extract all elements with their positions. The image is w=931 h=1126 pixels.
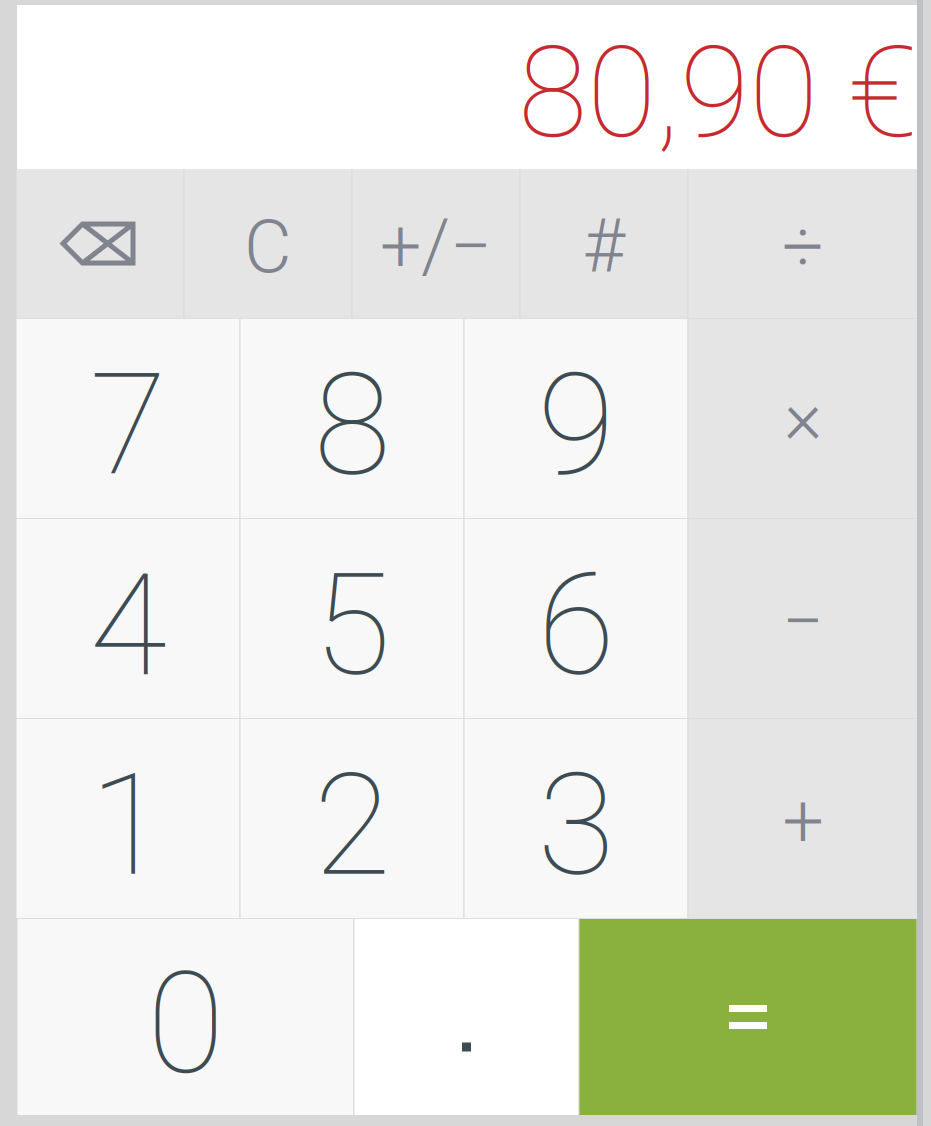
staticText: 0 [147, 941, 224, 1107]
button[interactable]: Delete [16, 169, 183, 318]
staticText: 8 [313, 343, 390, 508]
staticText: 9 [537, 343, 614, 508]
button[interactable]: 0 [17, 919, 353, 1115]
staticText: ÷ [782, 204, 824, 290]
staticText: 1 [89, 743, 166, 908]
staticText: 3 [537, 743, 614, 908]
staticText: 5 [313, 543, 390, 708]
button[interactable]: 1 [16, 719, 239, 918]
staticText: 6 [537, 543, 614, 708]
button[interactable]: 4 [16, 519, 239, 718]
button[interactable]: Decimal point [354, 919, 578, 1115]
staticText: 80,90 € [518, 19, 917, 167]
staticText: 2 [313, 743, 390, 908]
button[interactable]: 7 [16, 319, 239, 518]
button[interactable]: Number sign [520, 169, 687, 318]
staticText: 4 [89, 543, 166, 708]
button[interactable]: 9 [464, 319, 687, 518]
button[interactable]: Add [688, 719, 917, 918]
button[interactable]: 3 [464, 719, 687, 918]
staticText: + [782, 778, 823, 864]
staticText: C [244, 204, 292, 290]
button[interactable]: Equals [579, 919, 916, 1115]
staticText: # [582, 203, 625, 289]
staticText: − [782, 578, 824, 664]
button[interactable]: 5 [240, 519, 463, 718]
button[interactable]: 2 [240, 719, 463, 918]
button[interactable]: Clear [184, 169, 351, 318]
button[interactable]: Subtract [688, 519, 917, 718]
button[interactable]: Divide [688, 169, 917, 318]
button[interactable]: 6 [464, 519, 687, 718]
button[interactable]: Toggle sign [352, 169, 519, 318]
staticText: 7 [89, 343, 166, 508]
staticText: +/− [380, 203, 492, 289]
staticText: × [784, 374, 822, 460]
button[interactable]: 8 [240, 319, 463, 518]
button[interactable]: Multiply [688, 319, 917, 518]
